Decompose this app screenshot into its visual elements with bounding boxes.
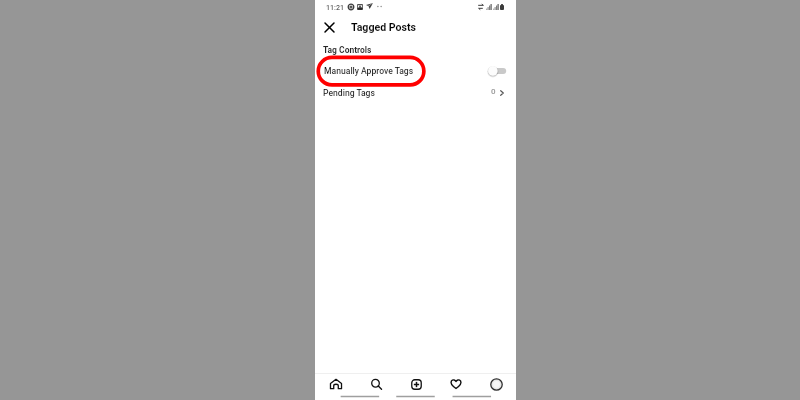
staticText: 11:21 — [326, 3, 345, 11]
button[interactable]: Home — [315, 373, 356, 395]
staticText: 0 — [491, 87, 496, 96]
button[interactable]: Manually Approve Tags — [315, 58, 516, 83]
button[interactable]: Manually Approve Tags switch — [487, 65, 507, 77]
staticText: Tag Controls — [323, 45, 372, 55]
button[interactable]: Create — [396, 373, 436, 395]
button[interactable]: Profile — [476, 373, 516, 395]
button[interactable]: Pending Tags — [315, 83, 516, 104]
button[interactable]: Close — [318, 16, 340, 38]
button[interactable]: Activity — [436, 373, 476, 395]
staticText: Tagged Posts — [351, 21, 417, 33]
staticText: Manually Approve Tags — [324, 66, 414, 76]
button[interactable]: Search — [356, 373, 396, 395]
staticText: Pending Tags — [323, 88, 375, 98]
